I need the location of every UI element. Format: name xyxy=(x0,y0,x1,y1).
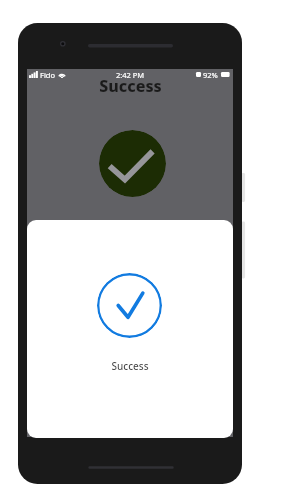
button[interactable]: Success check xyxy=(27,220,233,438)
button[interactable]: Success check xyxy=(97,273,162,338)
staticText: Success xyxy=(99,75,162,97)
staticText: 2:42 PM xyxy=(116,70,145,80)
button[interactable]: Operation succeeded xyxy=(99,130,166,197)
staticText: Fido xyxy=(40,70,55,80)
staticText: Success xyxy=(111,359,149,373)
staticText: 92% xyxy=(203,70,218,80)
